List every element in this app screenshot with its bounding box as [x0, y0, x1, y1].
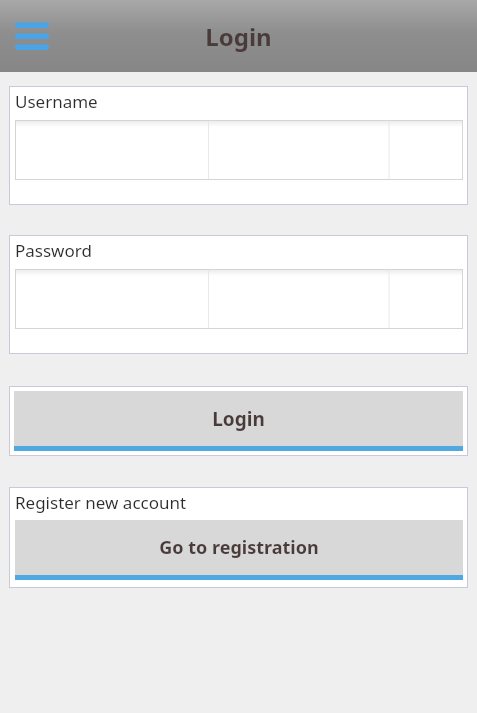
button[interactable]: Menu: [8, 12, 56, 60]
button[interactable]: Login: [14, 391, 463, 451]
staticText: Go to registration: [159, 535, 319, 560]
button[interactable]: [15, 120, 463, 180]
staticText: Register new account: [15, 491, 187, 514]
staticText: Password: [15, 239, 92, 262]
staticText: Login: [205, 20, 272, 53]
staticText: Login: [212, 406, 265, 432]
staticText: Username: [15, 90, 98, 113]
button[interactable]: Go to registration: [15, 520, 463, 580]
button[interactable]: [15, 269, 463, 329]
